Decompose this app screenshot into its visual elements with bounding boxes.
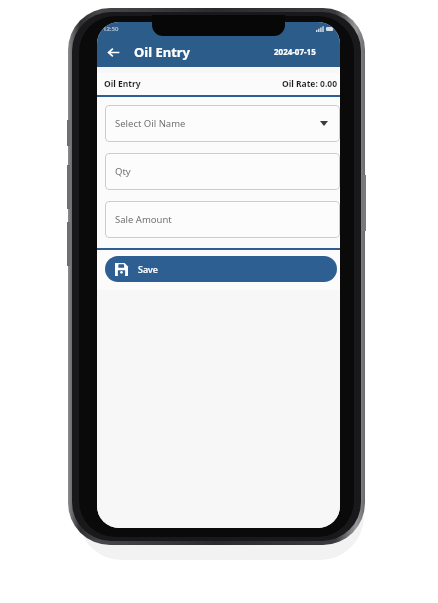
button[interactable]: Back bbox=[101, 40, 125, 64]
staticText: Oil Entry bbox=[104, 78, 141, 90]
staticText: Oil Rate: 0.00 bbox=[282, 78, 338, 90]
staticText: Sale Amount bbox=[115, 213, 172, 226]
button[interactable]: Save bbox=[105, 256, 337, 282]
staticText: Select Oil Name bbox=[115, 117, 186, 130]
button[interactable]: Sale Amount bbox=[105, 201, 340, 238]
button[interactable]: Qty bbox=[105, 153, 340, 190]
button[interactable]: Select Oil Name bbox=[105, 105, 340, 142]
staticText: Save bbox=[138, 263, 159, 275]
staticText: 2024-07-15 bbox=[274, 46, 316, 57]
staticText: Oil Entry bbox=[134, 43, 191, 61]
staticText: 12:50 bbox=[103, 25, 119, 33]
staticText: Qty bbox=[115, 165, 131, 178]
